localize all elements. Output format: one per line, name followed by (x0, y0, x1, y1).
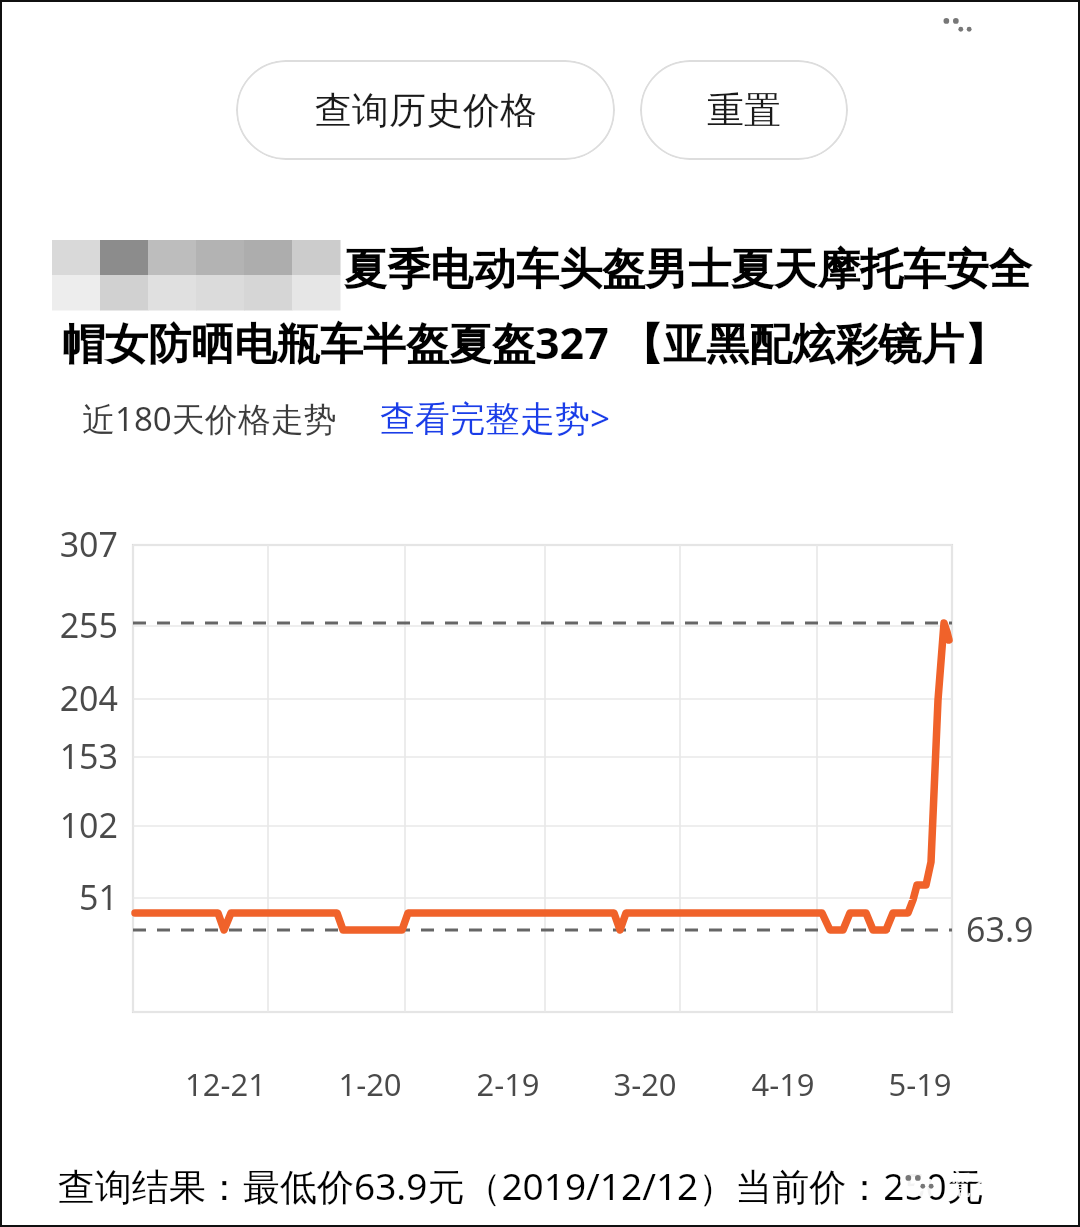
staticText: 帽女防晒电瓶车半盔夏盔327 【亚黑配炫彩镜片】 (62, 313, 1007, 372)
staticText: 查询结果：最低价63.9元（2019/12/12）当前价：250元 (58, 1160, 984, 1211)
staticText: 近180天价格走势 (82, 396, 337, 441)
staticText: 51 (79, 874, 118, 920)
button[interactable]: 重置 (640, 60, 848, 160)
staticText: 5-19 (888, 1063, 952, 1105)
button[interactable]: 查看完整走势> (380, 394, 611, 442)
staticText: 153 (59, 733, 118, 779)
staticText: 12-21 (185, 1063, 266, 1105)
staticText: 3-20 (613, 1063, 677, 1105)
staticText: 204 (59, 675, 118, 721)
staticText: 2-19 (476, 1063, 540, 1105)
staticText: 255 (59, 602, 118, 648)
staticText: 查询历史价格 (315, 87, 537, 134)
button[interactable]: 查询历史价格 (236, 60, 615, 160)
staticText: 查看完整走势> (380, 394, 611, 442)
staticText: 63.9 (966, 906, 1034, 952)
staticText: 4-19 (751, 1063, 815, 1105)
staticText: 307 (59, 521, 118, 567)
staticText: 魔都囡 (943, 1167, 1027, 1202)
staticText: 1-20 (338, 1063, 402, 1105)
staticText: 重置 (707, 87, 781, 134)
staticText: 夏季电动车头盔男士夏天摩托车安全 (344, 243, 1032, 297)
staticText: 102 (59, 802, 118, 848)
